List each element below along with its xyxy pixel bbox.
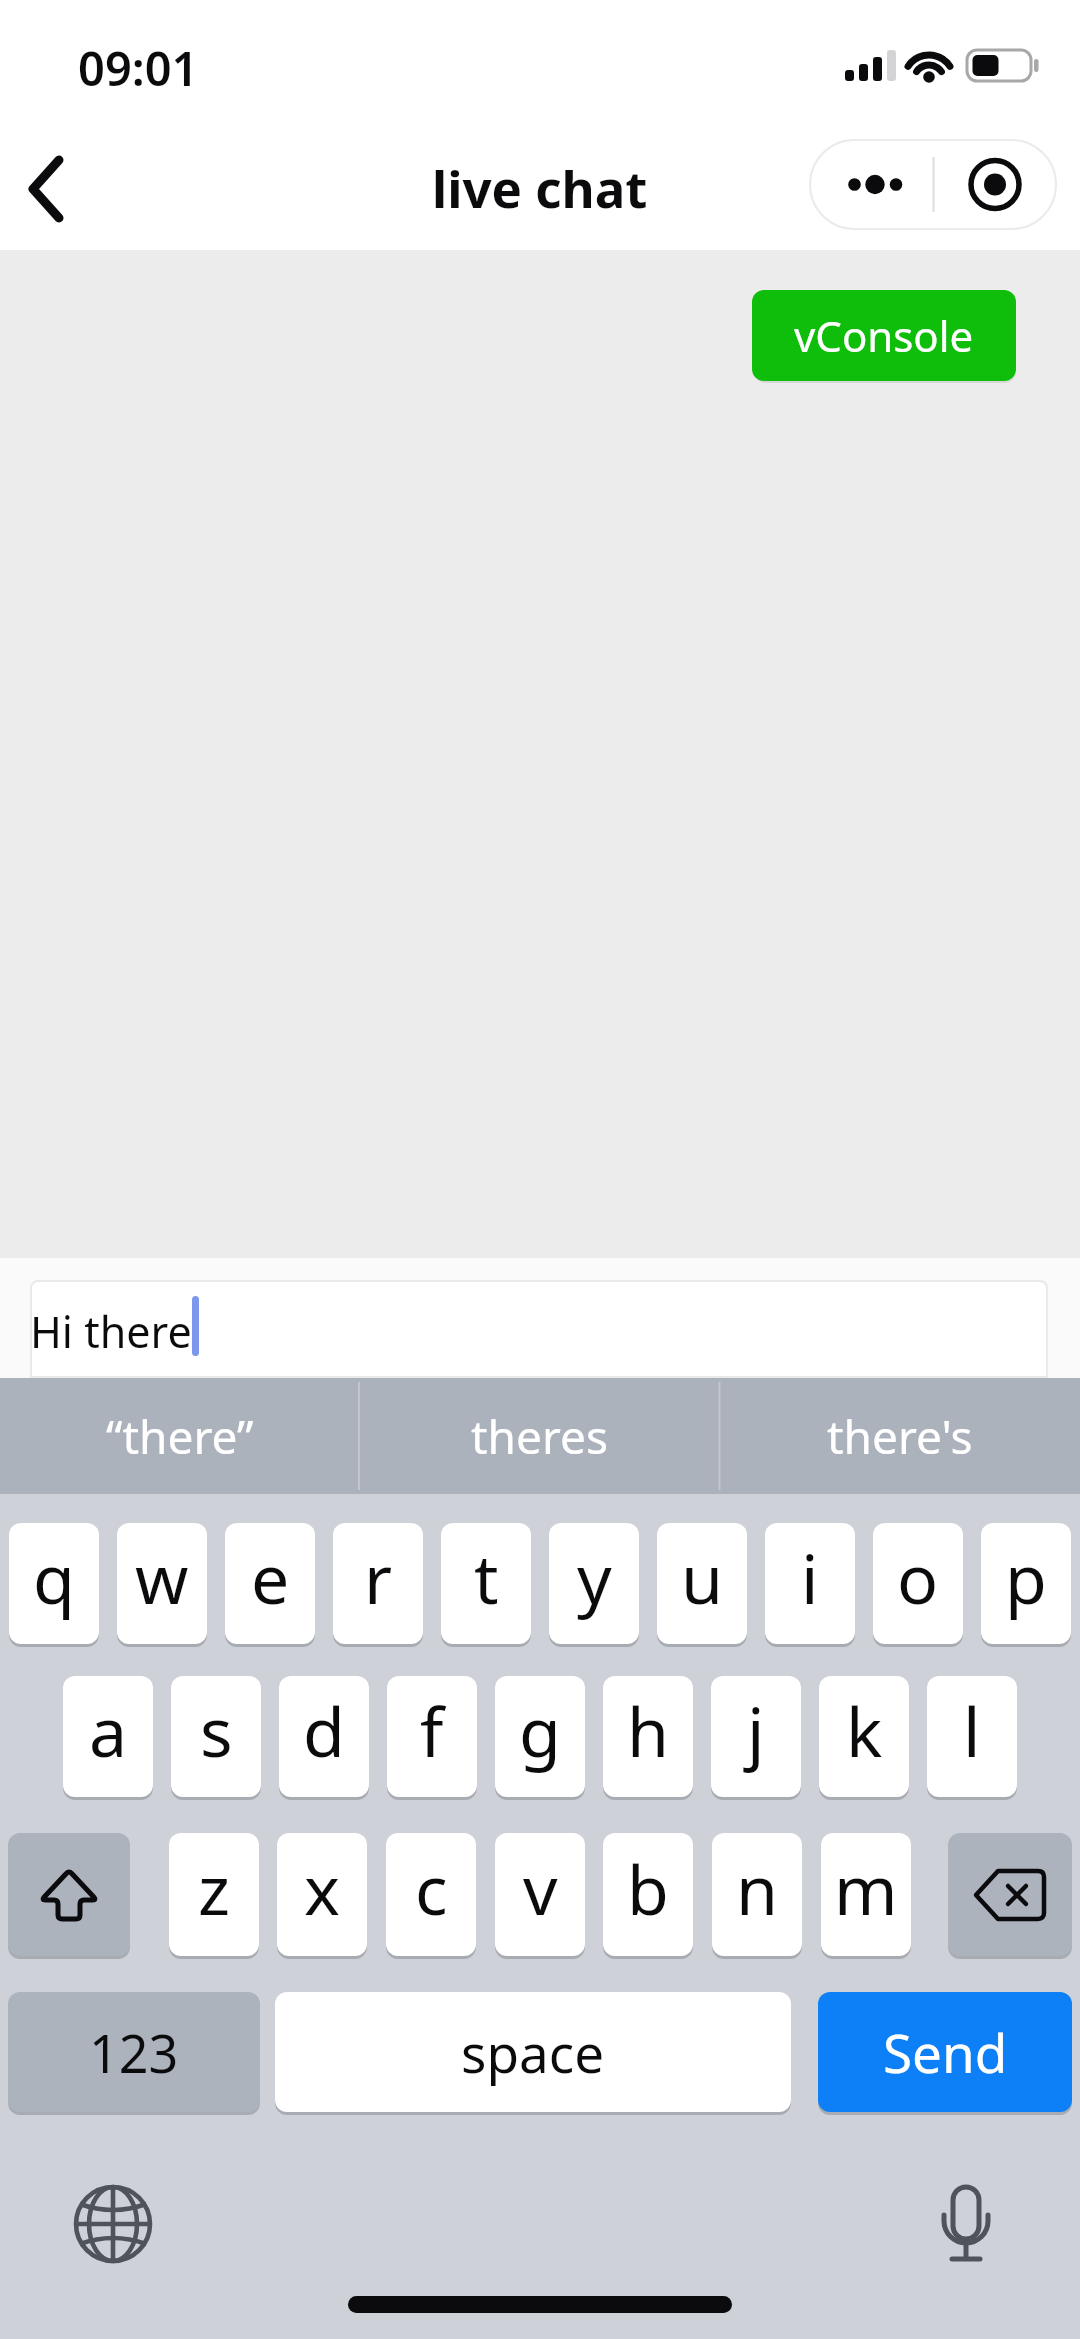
button[interactable]: l xyxy=(927,1676,1017,1797)
staticText: a xyxy=(89,1684,128,1777)
button[interactable]: o xyxy=(873,1523,963,1644)
button[interactable]: m xyxy=(821,1833,911,1956)
button[interactable]: g xyxy=(495,1676,585,1797)
staticText: Send xyxy=(883,2016,1008,2088)
staticText: f xyxy=(420,1684,444,1777)
staticText: 09:01 xyxy=(78,36,199,88)
button[interactable] xyxy=(922,2183,1010,2283)
staticText: y xyxy=(577,1531,612,1624)
button[interactable] xyxy=(69,2180,157,2268)
staticText: e xyxy=(251,1531,290,1624)
button[interactable]: r xyxy=(333,1523,423,1644)
button[interactable]: there's xyxy=(720,1378,1080,1494)
button[interactable]: k xyxy=(819,1676,909,1797)
button[interactable]: p xyxy=(981,1523,1071,1644)
button[interactable]: i xyxy=(765,1523,855,1644)
staticText: r xyxy=(364,1531,393,1624)
button[interactable]: n xyxy=(712,1833,802,1956)
staticText: “there” xyxy=(106,1405,254,1468)
button[interactable]: h xyxy=(603,1676,693,1797)
staticText: u xyxy=(681,1531,724,1624)
button[interactable]: a xyxy=(63,1676,153,1797)
button[interactable]: v xyxy=(495,1833,585,1956)
staticText: k xyxy=(846,1684,883,1777)
button[interactable]: q xyxy=(9,1523,99,1644)
staticText: q xyxy=(33,1531,75,1624)
staticText: v xyxy=(523,1842,558,1935)
staticText: vConsole xyxy=(794,307,974,364)
button[interactable] xyxy=(8,1833,130,1956)
button[interactable]: j xyxy=(711,1676,801,1797)
button[interactable]: b xyxy=(603,1833,693,1956)
staticText: theres xyxy=(471,1405,609,1468)
staticText: g xyxy=(519,1684,561,1777)
staticText: x xyxy=(304,1842,340,1935)
staticText: l xyxy=(963,1684,981,1777)
button[interactable]: “there” xyxy=(0,1378,359,1494)
staticText: d xyxy=(303,1684,345,1777)
staticText: b xyxy=(627,1842,669,1935)
button[interactable]: s xyxy=(171,1676,261,1797)
button[interactable]: u xyxy=(657,1523,747,1644)
staticText: w xyxy=(135,1531,189,1624)
staticText: o xyxy=(897,1531,939,1624)
button[interactable]: x xyxy=(277,1833,367,1956)
staticText: there's xyxy=(827,1405,973,1468)
staticText: t xyxy=(474,1531,499,1624)
button[interactable]: vConsole xyxy=(752,290,1016,381)
button[interactable]: z xyxy=(169,1833,259,1956)
button[interactable]: space xyxy=(275,1992,791,2112)
staticText: p xyxy=(1005,1531,1047,1624)
staticText: Hi there xyxy=(30,1302,192,1361)
staticText: s xyxy=(200,1684,233,1777)
staticText: h xyxy=(627,1684,670,1777)
staticText: i xyxy=(801,1531,819,1624)
button[interactable] xyxy=(809,139,1057,230)
button[interactable] xyxy=(6,150,86,230)
button[interactable]: w xyxy=(117,1523,207,1644)
button[interactable]: f xyxy=(387,1676,477,1797)
staticText: space xyxy=(461,2016,605,2088)
staticText: c xyxy=(415,1842,448,1935)
button[interactable] xyxy=(948,1833,1072,1956)
staticText: live chat xyxy=(432,153,648,222)
button[interactable]: Hi there xyxy=(30,1280,1048,1378)
staticText: j xyxy=(747,1684,765,1777)
button[interactable]: 123 xyxy=(8,1992,260,2112)
staticText: n xyxy=(736,1842,779,1935)
button[interactable]: d xyxy=(279,1676,369,1797)
staticText: z xyxy=(198,1842,230,1935)
staticText: 123 xyxy=(89,2017,179,2088)
button[interactable]: Send xyxy=(818,1992,1072,2112)
button[interactable]: y xyxy=(549,1523,639,1644)
staticText: m xyxy=(834,1842,898,1935)
button[interactable]: e xyxy=(225,1523,315,1644)
button[interactable]: t xyxy=(441,1523,531,1644)
button[interactable]: theres xyxy=(360,1378,719,1494)
button[interactable]: c xyxy=(386,1833,476,1956)
